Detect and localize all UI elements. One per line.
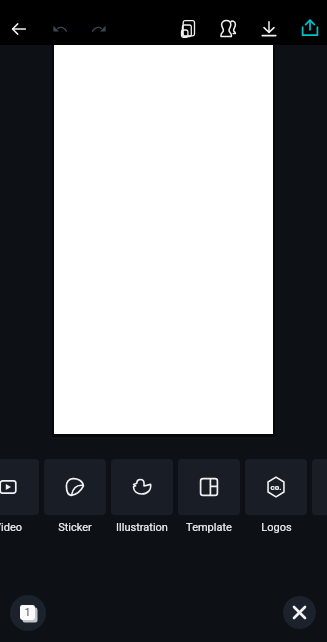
button[interactable]: Video: [0, 459, 59, 535]
staticText: Video: [0, 521, 22, 534]
staticText: 1: [24, 606, 31, 619]
button[interactable]: Back: [8, 18, 30, 40]
staticText: co.: [270, 483, 282, 492]
button[interactable]: Template: [158, 459, 260, 535]
button[interactable]: Illustration: [91, 459, 193, 535]
button[interactable]: Sticker: [24, 459, 126, 535]
staticText: Logos: [261, 521, 292, 534]
staticText: Illustration: [116, 521, 168, 534]
button[interactable]: Undo: [50, 19, 70, 39]
button[interactable]: Redo: [89, 19, 109, 39]
button[interactable]: Close: [283, 596, 316, 629]
button[interactable]: co.: [225, 459, 327, 535]
button[interactable]: Resize: [177, 18, 199, 40]
staticText: Sticker: [58, 521, 92, 534]
button[interactable]: Pages: [10, 595, 46, 631]
button[interactable]: Download: [258, 18, 280, 40]
button[interactable]: Share: [299, 17, 321, 39]
staticText: Template: [186, 521, 232, 534]
button[interactable]: Collaborators: [218, 18, 240, 40]
button[interactable]: Photos: [292, 459, 327, 535]
